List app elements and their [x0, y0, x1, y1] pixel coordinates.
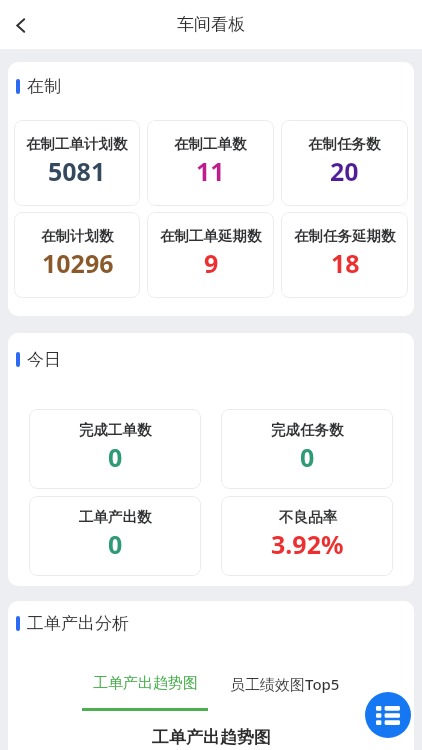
staticText: 完成任务数 — [271, 421, 344, 439]
button[interactable]: 在制工单计划数 — [14, 120, 140, 206]
button[interactable]: 完成任务数 — [221, 409, 393, 489]
button[interactable]: 工单产出趋势图 — [82, 674, 208, 711]
staticText: 在制工单数 — [174, 135, 247, 153]
button[interactable]: 在制计划数 — [14, 212, 140, 298]
staticText: 20 — [330, 154, 359, 188]
staticText: 在制工单延期数 — [160, 227, 262, 245]
staticText: 在制 — [27, 76, 61, 97]
button[interactable]: 不良品率 — [221, 496, 393, 576]
button[interactable]: 在制工单数 — [147, 120, 274, 206]
staticText: 9 — [204, 246, 219, 280]
staticText: 10296 — [42, 246, 114, 280]
staticText: 车间看板 — [177, 14, 245, 35]
staticText: 在制任务延期数 — [294, 227, 396, 245]
staticText: 工单产出趋势图 — [93, 674, 198, 693]
staticText: 今日 — [27, 349, 61, 370]
button[interactable]: 工单产出数 — [29, 496, 201, 576]
staticText: 工单产出分析 — [27, 613, 129, 634]
button[interactable] — [5, 9, 37, 41]
button[interactable] — [365, 692, 411, 738]
button[interactable]: 在制任务数 — [281, 120, 408, 206]
button[interactable]: 在制任务延期数 — [281, 212, 408, 298]
staticText: 工单产出趋势图 — [152, 727, 271, 748]
button[interactable]: 员工绩效图Top5 — [230, 674, 340, 694]
staticText: 在制工单计划数 — [26, 135, 128, 153]
button[interactable]: 完成工单数 — [29, 409, 201, 489]
staticText: 在制任务数 — [308, 135, 381, 153]
staticText: 0 — [108, 527, 123, 561]
staticText: 员工绩效图Top5 — [230, 674, 340, 694]
staticText: 5081 — [48, 154, 106, 188]
button[interactable]: 在制工单延期数 — [147, 212, 274, 298]
staticText: 3.92% — [271, 527, 344, 561]
staticText: 0 — [108, 440, 123, 474]
staticText: 工单产出数 — [79, 508, 152, 526]
staticText: 11 — [196, 154, 225, 188]
staticText: 18 — [331, 246, 360, 280]
staticText: 完成工单数 — [79, 421, 152, 439]
staticText: 0 — [300, 440, 315, 474]
staticText: 在制计划数 — [41, 227, 114, 245]
staticText: 不良品率 — [279, 508, 337, 526]
